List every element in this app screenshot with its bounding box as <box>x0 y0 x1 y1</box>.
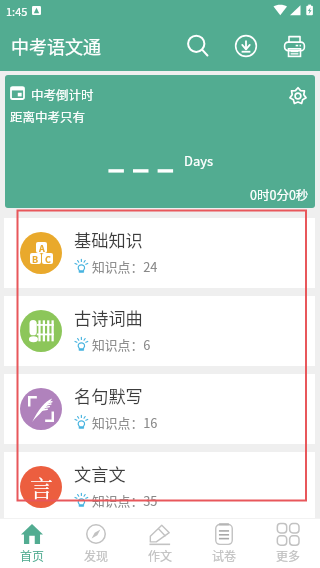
button[interactable]: 作文 <box>128 519 192 568</box>
staticText: 名句默写 <box>74 383 143 408</box>
staticText: 知识点：24 <box>92 257 158 276</box>
staticText: 发现 <box>84 547 109 564</box>
staticText: 文言文 <box>74 461 126 486</box>
staticText: 中考语文通 <box>11 33 101 59</box>
staticText: B <box>32 253 39 264</box>
staticText: Days <box>184 151 214 170</box>
staticText: 知识点：16 <box>92 413 158 432</box>
button[interactable]: 更多 <box>256 519 320 568</box>
staticText: 中考倒计时 <box>31 85 94 103</box>
button[interactable]: 中考倒计时 <box>5 75 315 208</box>
staticText: 古诗词曲 <box>74 305 143 330</box>
button[interactable]: 首页 <box>0 519 64 568</box>
staticText: 更多 <box>276 547 301 564</box>
button[interactable]: Search <box>176 24 220 68</box>
button[interactable]: Download <box>224 24 268 68</box>
staticText: 1:45 <box>6 3 28 19</box>
button[interactable]: 名句默写 <box>4 374 315 444</box>
button[interactable]: 发现 <box>64 519 128 568</box>
staticText: 0时0分0秒 <box>250 185 309 203</box>
staticText: 距离中考只有 <box>10 107 86 125</box>
button[interactable]: 古诗词曲 <box>4 296 315 366</box>
staticText: 试卷 <box>212 547 237 564</box>
button[interactable]: Print <box>272 24 316 68</box>
button[interactable]: A <box>4 218 315 288</box>
staticText: 言 <box>30 471 53 504</box>
staticText: A <box>39 242 45 253</box>
staticText: C <box>45 253 51 264</box>
button[interactable]: 试卷 <box>192 519 256 568</box>
staticText: 知识点：35 <box>92 491 158 510</box>
button[interactable]: Settings <box>280 78 315 113</box>
staticText: 基础知识 <box>74 227 143 252</box>
staticText: 首页 <box>20 547 45 564</box>
staticText: 作文 <box>148 547 173 564</box>
button[interactable]: 言 <box>4 452 315 522</box>
staticText: 知识点：6 <box>92 335 151 354</box>
